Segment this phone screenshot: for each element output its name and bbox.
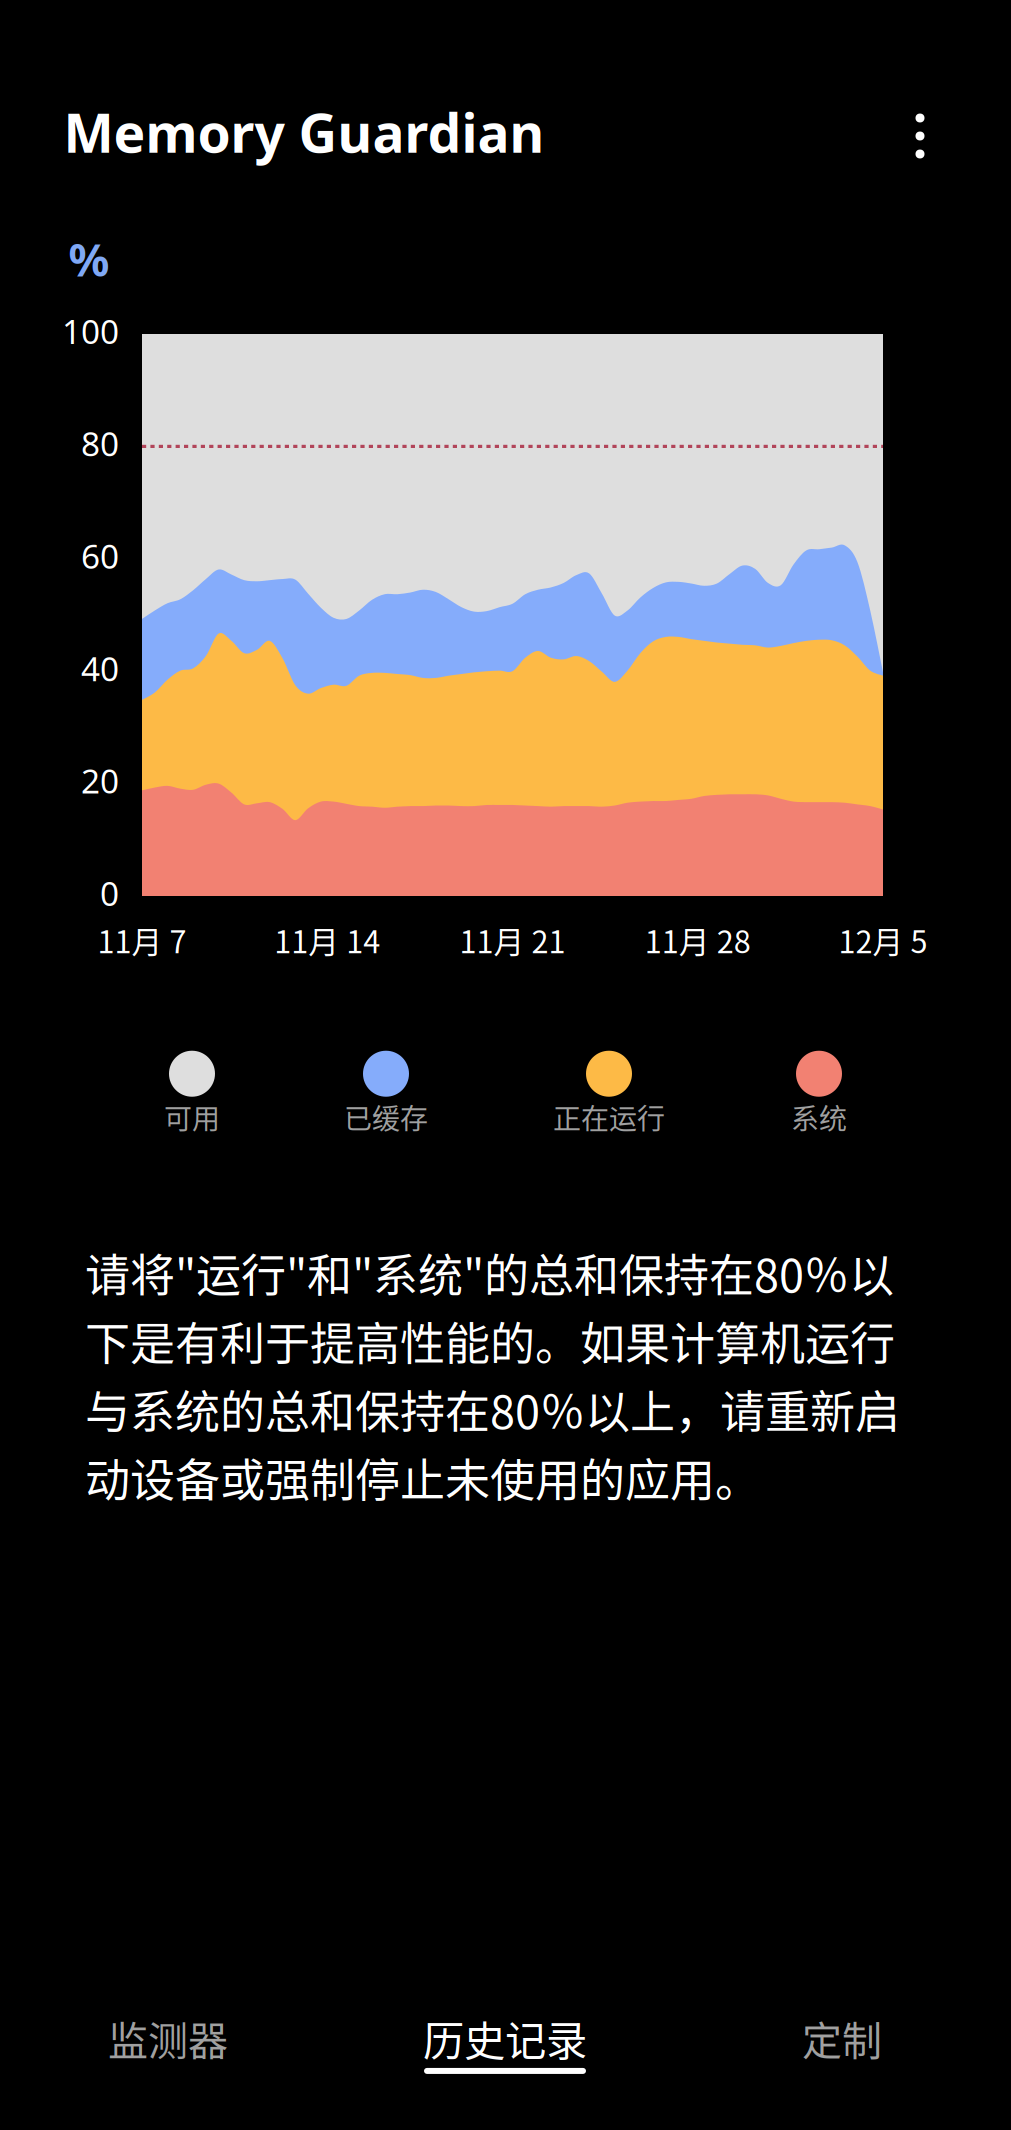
staticText: 正在运行 <box>553 1097 665 1137</box>
staticText: 80 <box>81 421 119 466</box>
staticText: 11月 7 <box>97 918 186 962</box>
staticText: 11月 28 <box>645 918 751 962</box>
staticText: 系统 <box>791 1097 847 1137</box>
button[interactable]: 系统 <box>719 1032 919 1156</box>
staticText: 20 <box>81 758 119 803</box>
staticText: 40 <box>81 646 119 690</box>
staticText: 监测器 <box>108 2009 228 2067</box>
button[interactable]: 已缓存 <box>286 1032 486 1156</box>
staticText: 11月 14 <box>274 918 380 962</box>
staticText: 11月 21 <box>459 918 565 962</box>
staticText: 定制 <box>802 2009 882 2067</box>
button[interactable]: 监测器 <box>0 1976 336 2106</box>
button[interactable]: 定制 <box>673 1976 1010 2106</box>
staticText: 历史记录 <box>423 2008 587 2068</box>
button[interactable]: 正在运行 <box>509 1032 709 1156</box>
staticText: 100 <box>62 309 119 353</box>
staticText: 0 <box>100 871 119 915</box>
staticText: 已缓存 <box>344 1097 428 1137</box>
staticText: 请将"运行"和"系统"的总和保持在80％以下是有利于提高性能的。如果计算机运行与… <box>85 1240 900 1510</box>
staticText: 12月 5 <box>838 918 927 962</box>
button[interactable]: More options <box>885 101 955 171</box>
staticText: Memory Guardian <box>63 97 544 167</box>
button[interactable]: 可用 <box>92 1032 292 1156</box>
button[interactable]: 历史记录 <box>336 1976 673 2106</box>
staticText: 60 <box>81 534 119 578</box>
staticText: % <box>68 229 109 289</box>
staticText: 可用 <box>164 1097 220 1137</box>
